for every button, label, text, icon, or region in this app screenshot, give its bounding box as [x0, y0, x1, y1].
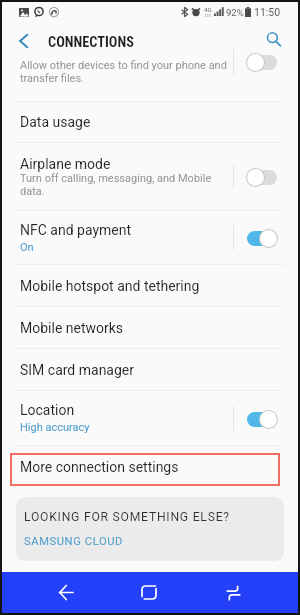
staticText: CONNECTIONS — [48, 34, 134, 51]
staticText: Location — [20, 402, 75, 418]
button[interactable]: Mobile hotspot and tethering — [2, 265, 298, 306]
button[interactable]: NFC and payment — [2, 211, 298, 264]
staticText: Data usage — [20, 114, 91, 130]
button[interactable]: Location switch — [246, 409, 278, 429]
staticText: SAMSUNG CLOUD — [24, 535, 124, 548]
button[interactable]: Back — [24, 572, 107, 613]
button[interactable]: LOOKING FOR SOMETHING ELSE? — [16, 497, 284, 561]
staticText: 4G — [204, 6, 212, 13]
staticText: LTE — [205, 13, 212, 18]
button[interactable]: Recent apps — [191, 572, 275, 613]
button[interactable]: Mobile networks — [2, 307, 298, 348]
button[interactable]: Allow other devices to find your phone a… — [2, 59, 298, 101]
button[interactable]: Home — [107, 572, 191, 613]
staticText: 92% — [226, 7, 244, 18]
button[interactable]: Data usage — [2, 102, 298, 142]
staticText: Mobile hotspot and tethering — [20, 278, 200, 294]
button[interactable]: NFC and payment switch — [246, 228, 278, 248]
button[interactable]: Visibility switch — [246, 52, 278, 72]
button[interactable]: Airplane mode switch — [246, 167, 278, 187]
staticText: SIM card manager — [20, 362, 135, 378]
button[interactable]: Airplane mode — [2, 143, 298, 210]
staticText: Allow other devices to find your phone a… — [20, 59, 229, 84]
button[interactable]: SIM card manager — [2, 349, 298, 390]
staticText: Mobile networks — [20, 320, 124, 336]
staticText: High accuracy — [20, 421, 90, 434]
staticText: Airplane mode — [20, 156, 111, 172]
staticText: More connection settings — [20, 459, 179, 475]
staticText: NFC and payment — [20, 222, 132, 238]
staticText: On — [20, 241, 34, 254]
staticText: Turn off calling, messaging, and Mobile … — [20, 172, 229, 197]
button[interactable]: More connection settings — [2, 446, 298, 487]
button[interactable]: Navigate up — [7, 24, 39, 56]
staticText: LOOKING FOR SOMETHING ELSE? — [24, 510, 230, 524]
staticText: 11:50 — [254, 6, 281, 18]
button[interactable]: Location — [2, 391, 298, 445]
button[interactable]: Search — [259, 25, 289, 55]
